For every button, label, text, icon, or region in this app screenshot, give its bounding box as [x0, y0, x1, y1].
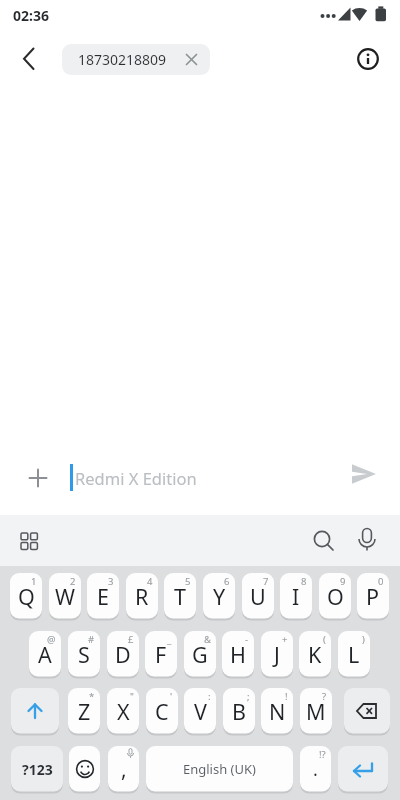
staticText: ?123 [22, 760, 53, 779]
staticText: F [155, 640, 167, 669]
staticText: 8 [301, 575, 307, 588]
staticText: ! [285, 690, 288, 703]
staticText: E [97, 582, 109, 611]
staticText: G [192, 640, 208, 669]
button[interactable]: @ [29, 631, 61, 677]
staticText: V [194, 697, 207, 726]
button[interactable]: ' [146, 688, 178, 734]
button[interactable] [14, 44, 44, 74]
staticText: ) [362, 633, 365, 646]
button[interactable]: " [107, 688, 139, 734]
button[interactable]: ?123 [11, 746, 63, 792]
staticText: English (UK) [183, 760, 256, 778]
staticText: W [55, 582, 75, 611]
staticText: ; [247, 690, 250, 703]
button[interactable]: 1 [10, 573, 42, 619]
button[interactable] [69, 746, 100, 792]
button[interactable] [353, 526, 381, 554]
button[interactable]: 7 [242, 573, 274, 619]
staticText: @ [47, 633, 56, 646]
button[interactable] [348, 458, 380, 490]
staticText: Z [78, 697, 91, 726]
button[interactable] [17, 529, 41, 553]
staticText: - [245, 633, 249, 646]
button[interactable]: _ [145, 631, 177, 677]
button[interactable]: ) [338, 631, 370, 677]
staticText: + [282, 633, 288, 646]
staticText: C [155, 697, 169, 726]
button[interactable]: ? [300, 688, 332, 734]
staticText: ? [322, 690, 327, 703]
button[interactable]: & [184, 631, 216, 677]
staticText: , [121, 755, 127, 784]
button[interactable]: 5 [164, 573, 196, 619]
staticText: P [366, 582, 380, 611]
staticText: Redmi X Edition [75, 467, 197, 489]
staticText: # [88, 633, 95, 646]
staticText: X [117, 697, 130, 726]
button[interactable] [344, 688, 390, 734]
button[interactable]: 4 [126, 573, 158, 619]
staticText: ' [170, 690, 173, 703]
staticText: 0 [378, 575, 384, 588]
staticText: ( [323, 633, 326, 646]
button[interactable]: !? [300, 746, 331, 792]
button[interactable]: 6 [203, 573, 235, 619]
staticText: I [292, 582, 300, 611]
button[interactable]: 0 [357, 573, 389, 619]
button[interactable]: : [184, 688, 216, 734]
staticText: 9 [340, 575, 346, 588]
staticText: * [89, 690, 95, 703]
staticText: T [174, 582, 186, 611]
staticText: Y [213, 582, 226, 611]
button[interactable]: 18730218809 [62, 44, 210, 75]
staticText: 5 [185, 575, 191, 588]
staticText: 1 [31, 575, 37, 588]
staticText: £ [128, 633, 134, 646]
staticText: " [130, 690, 134, 703]
staticText: 2 [70, 575, 76, 588]
button[interactable]: + [261, 631, 293, 677]
staticText: Q [18, 582, 35, 611]
staticText: L [348, 640, 360, 669]
staticText: 6 [224, 575, 230, 588]
button[interactable]: 3 [87, 573, 119, 619]
button[interactable]: 2 [49, 573, 81, 619]
staticText: A [38, 640, 52, 669]
button[interactable]: * [68, 688, 100, 734]
button[interactable] [11, 688, 59, 734]
staticText: _ [167, 633, 172, 646]
staticText: S [78, 640, 90, 669]
button[interactable]: # [68, 631, 100, 677]
button[interactable]: £ [107, 631, 139, 677]
staticText: J [274, 640, 280, 669]
button[interactable] [310, 528, 336, 554]
staticText: B [232, 697, 246, 726]
staticText: M [306, 697, 326, 726]
button[interactable]: 8 [280, 573, 312, 619]
staticText: D [115, 640, 131, 669]
button[interactable]: - [222, 631, 254, 677]
staticText: !? [319, 748, 326, 761]
button[interactable]: , [108, 746, 139, 792]
staticText: 02:36 [13, 6, 49, 25]
button[interactable] [22, 462, 54, 494]
button[interactable]: ! [261, 688, 293, 734]
staticText: H [230, 640, 246, 669]
staticText: & [204, 633, 211, 646]
staticText: 18730218809 [78, 50, 167, 69]
staticText: R [135, 582, 149, 611]
staticText: N [269, 697, 286, 726]
button[interactable]: ( [299, 631, 331, 677]
button[interactable]: 9 [319, 573, 351, 619]
staticText: 7 [263, 575, 269, 588]
button[interactable]: English (UK) [146, 746, 293, 792]
staticText: K [308, 640, 322, 669]
button[interactable] [356, 47, 380, 71]
staticText: . [313, 757, 318, 782]
staticText: 4 [147, 575, 153, 588]
button[interactable] [338, 746, 388, 792]
staticText: : [208, 690, 211, 703]
staticText: 3 [108, 575, 114, 588]
button[interactable]: ; [223, 688, 255, 734]
